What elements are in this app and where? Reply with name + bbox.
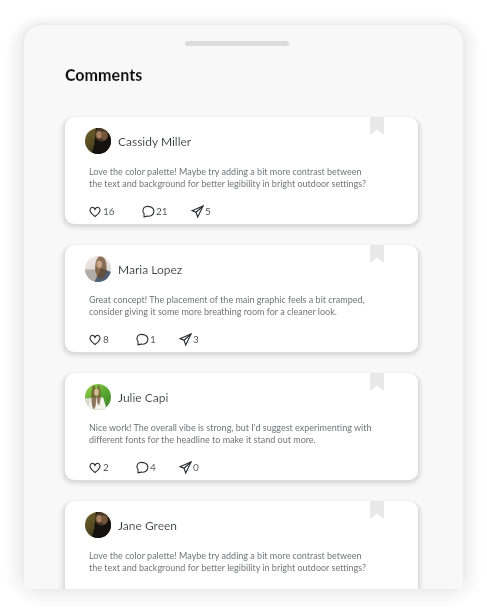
staticText: 1 — [150, 333, 156, 345]
button[interactable]: Comment — [136, 333, 156, 345]
staticText: 0 — [193, 461, 199, 473]
button[interactable]: Like — [89, 333, 109, 345]
button[interactable]: Share — [192, 205, 211, 217]
button[interactable]: Share — [180, 461, 199, 473]
staticText: Julie Capi — [118, 390, 169, 404]
staticText: 3 — [193, 333, 199, 345]
staticText: Comments — [65, 65, 143, 84]
button[interactable]: Jane Green — [65, 501, 418, 589]
staticText: Maria Lopez — [118, 262, 183, 276]
button[interactable]: Julie Capi — [65, 373, 418, 480]
button[interactable]: Comment — [136, 461, 156, 473]
button[interactable]: Comment — [142, 205, 168, 217]
staticText: 5 — [205, 205, 211, 217]
staticText: Nice work! The overall vibe is strong, b… — [89, 421, 375, 445]
staticText: Love the color palette! Maybe try adding… — [89, 549, 375, 573]
staticText: 8 — [103, 333, 109, 345]
button[interactable]: Share — [180, 333, 199, 345]
button[interactable]: Like — [89, 461, 109, 473]
staticText: 2 — [103, 461, 109, 473]
staticText: 4 — [150, 461, 156, 473]
button[interactable]: Maria Lopez — [65, 245, 418, 352]
button[interactable]: Like — [89, 205, 115, 217]
staticText: 16 — [103, 205, 115, 217]
staticText: Great concept! The placement of the main… — [89, 293, 375, 317]
staticText: Love the color palette! Maybe try adding… — [89, 165, 375, 189]
staticText: Jane Green — [118, 518, 178, 532]
staticText: Cassidy Miller — [118, 134, 192, 148]
button[interactable]: Cassidy Miller — [65, 117, 418, 224]
staticText: 21 — [156, 205, 168, 217]
